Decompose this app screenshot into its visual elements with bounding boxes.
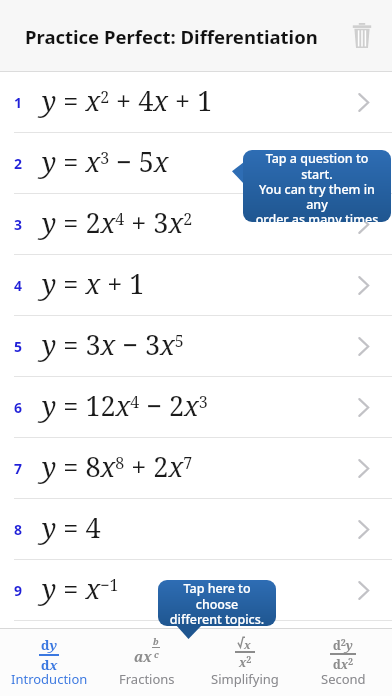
button[interactable]: 7 — [0, 438, 392, 499]
staticText: ax — [134, 647, 152, 666]
staticText: 9 — [14, 581, 23, 600]
staticText: d2y — [333, 636, 353, 653]
staticText: y = x2 + 4x + 1 — [42, 82, 213, 119]
button[interactable]: 9 — [0, 560, 392, 621]
button[interactable]: 8 — [0, 499, 392, 560]
staticText: Introduction — [11, 670, 88, 688]
staticText: 8 — [14, 520, 23, 539]
staticText: y = x−1 — [42, 570, 119, 607]
staticText: Simplifying — [211, 670, 279, 688]
staticText: 3 — [14, 215, 23, 234]
staticText: Second — [321, 670, 366, 688]
staticText: 4 — [14, 276, 23, 295]
staticText: dx2 — [333, 655, 354, 670]
staticText: 5 — [14, 337, 23, 356]
staticText: y = 12x4 − 2x3 — [42, 387, 208, 424]
button[interactable]: ax — [98, 628, 196, 696]
staticText: x — [244, 637, 251, 652]
button[interactable]: Delete — [340, 14, 384, 58]
staticText: Fractions — [119, 670, 175, 688]
staticText: dy — [41, 636, 58, 654]
staticText: y = 4 — [42, 509, 101, 546]
button[interactable]: d2y — [294, 628, 392, 696]
button[interactable]: 3 — [0, 194, 392, 255]
staticText: 6 — [14, 398, 23, 417]
button[interactable]: 5 — [0, 316, 392, 377]
staticText: x2 — [239, 653, 252, 670]
button[interactable]: dy — [0, 628, 98, 696]
staticText: Practice Perfect: Differentiation — [25, 24, 318, 49]
staticText: Tap here to choose different topics. — [165, 580, 269, 626]
staticText: dx — [41, 656, 58, 670]
button[interactable]: 1 — [0, 72, 392, 133]
staticText: b — [153, 635, 159, 647]
staticText: c — [154, 648, 159, 660]
staticText: 2 — [14, 154, 23, 173]
button[interactable]: 4 — [0, 255, 392, 316]
button[interactable]: 2 — [0, 133, 392, 194]
staticText: y = 3x − 3x5 — [42, 326, 184, 363]
button[interactable]: x — [196, 628, 294, 696]
staticText: Tap a question to start. You can try the… — [250, 150, 384, 222]
staticText: 1 — [14, 93, 23, 112]
staticText: y = 8x8 + 2x7 — [42, 448, 193, 485]
staticText: 7 — [14, 459, 23, 478]
staticText: y = 2x4 + 3x2 — [42, 204, 193, 241]
button[interactable]: 6 — [0, 377, 392, 438]
staticText: y = x + 1 — [42, 265, 145, 302]
staticText: y = x3 − 5x — [42, 143, 169, 180]
